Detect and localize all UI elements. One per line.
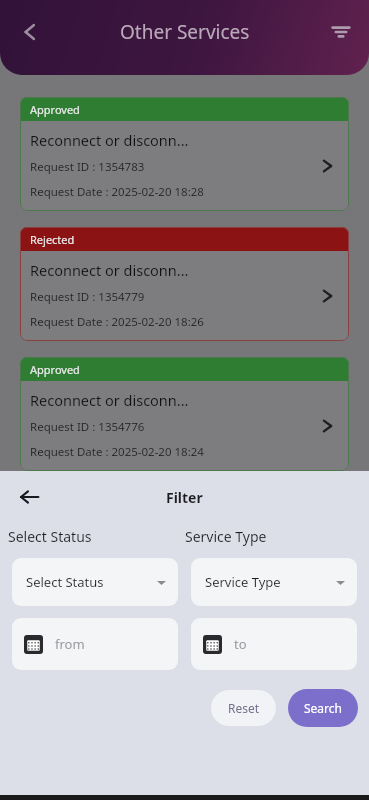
staticText: to bbox=[234, 635, 247, 653]
staticText: Reconnect or disconn... bbox=[30, 130, 189, 150]
staticText: Filter bbox=[166, 488, 203, 507]
button[interactable]: Search bbox=[288, 689, 358, 727]
staticText: from bbox=[55, 635, 85, 653]
staticText: Request ID : 1354779 bbox=[30, 289, 145, 305]
button[interactable]: Approved bbox=[20, 357, 349, 471]
staticText: Reconnect or disconn... bbox=[30, 390, 189, 410]
button[interactable]: from bbox=[12, 618, 178, 670]
button[interactable]: Back bbox=[10, 477, 50, 517]
staticText: Rejected bbox=[30, 232, 75, 247]
staticText: Search bbox=[304, 700, 342, 716]
button[interactable]: Filter bbox=[321, 12, 361, 52]
staticText: Request Date : 2025-02-20 18:24 bbox=[30, 444, 204, 460]
staticText: Reconnect or disconn... bbox=[30, 260, 189, 280]
staticText: Select Status bbox=[26, 573, 104, 591]
button[interactable]: Back bbox=[8, 10, 52, 54]
staticText: Other Services bbox=[120, 19, 250, 45]
button[interactable]: Service Type bbox=[191, 558, 357, 606]
button[interactable]: Select Status bbox=[12, 558, 178, 606]
staticText: Request Date : 2025-02-20 18:26 bbox=[30, 314, 204, 330]
staticText: Request Date : 2025-02-20 18:28 bbox=[30, 184, 204, 200]
staticText: Service Type bbox=[205, 573, 281, 591]
button[interactable]: Reset bbox=[211, 690, 276, 726]
button[interactable]: to bbox=[191, 618, 357, 670]
staticText: Request ID : 1354776 bbox=[30, 419, 145, 435]
button[interactable]: Rejected bbox=[20, 227, 349, 341]
staticText: Reset bbox=[228, 700, 260, 716]
staticText: Approved bbox=[30, 362, 80, 377]
staticText: Approved bbox=[30, 102, 80, 117]
staticText: Select Status bbox=[8, 527, 185, 546]
staticText: Request ID : 1354783 bbox=[30, 159, 145, 175]
button[interactable]: Approved bbox=[20, 97, 349, 211]
staticText: Service Type bbox=[185, 527, 267, 546]
